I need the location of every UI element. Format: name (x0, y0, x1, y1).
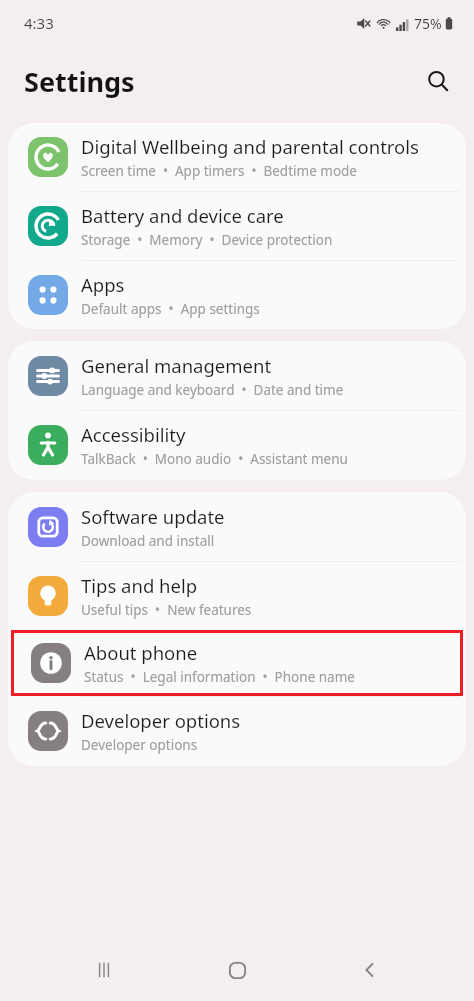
button[interactable]: Tips and help (8, 562, 466, 630)
staticText: Battery and device care (81, 203, 284, 228)
staticText: Storage • Memory • Device protection (81, 231, 333, 249)
staticText: Tips and help (81, 573, 198, 598)
button[interactable]: Search (416, 59, 460, 103)
staticText: Apps (81, 272, 125, 297)
staticText: Status • Legal information • Phone name (84, 668, 355, 686)
button[interactable]: Software update (8, 492, 466, 561)
staticText: Digital Wellbeing and parental controls (81, 134, 419, 159)
staticText: Default apps • App settings (81, 300, 260, 318)
button[interactable]: Recents (75, 941, 133, 999)
staticText: General management (81, 353, 272, 378)
button[interactable]: About phone (11, 630, 463, 696)
staticText: Accessibility (81, 422, 186, 447)
button[interactable]: Home (208, 941, 266, 999)
staticText: About phone (84, 640, 198, 665)
staticText: 4:33 (24, 13, 54, 33)
staticText: Useful tips • New features (81, 601, 252, 619)
button[interactable]: Digital Wellbeing and parental controls (8, 123, 466, 191)
staticText: Developer options (81, 708, 241, 733)
button[interactable]: Apps (8, 261, 466, 329)
staticText: Download and install (81, 532, 215, 550)
button[interactable]: Accessibility (8, 411, 466, 480)
button[interactable]: General management (8, 341, 466, 410)
staticText: TalkBack • Mono audio • Assistant menu (81, 450, 348, 468)
button[interactable]: Back (341, 941, 399, 999)
button[interactable]: Battery and device care (8, 192, 466, 260)
staticText: Developer options (81, 736, 198, 754)
staticText: Language and keyboard • Date and time (81, 381, 344, 399)
staticText: Screen time • App timers • Bedtime mode (81, 162, 357, 180)
staticText: Settings (24, 63, 135, 100)
staticText: Software update (81, 504, 225, 529)
button[interactable]: Developer options (8, 697, 466, 766)
staticText: 75% (414, 14, 442, 33)
